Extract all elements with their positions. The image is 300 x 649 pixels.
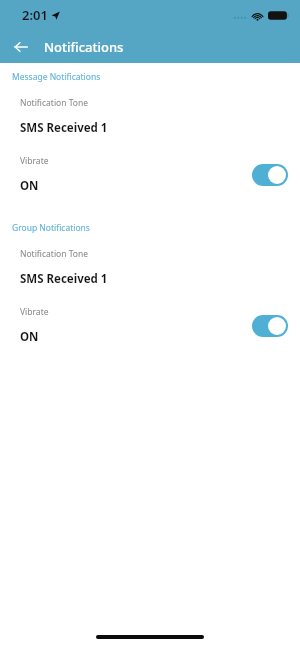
staticText: SMS Received 1 <box>20 120 108 136</box>
button[interactable]: Vibrate <box>0 306 300 345</box>
button[interactable]: Back <box>10 36 32 58</box>
staticText: Message Notifications <box>12 71 101 83</box>
staticText: Vibrate <box>20 306 49 318</box>
button[interactable]: Vibrate toggle, on <box>252 164 288 186</box>
staticText: ON <box>20 178 39 194</box>
staticText: Group Notifications <box>12 222 90 234</box>
staticText: Notification Tone <box>20 248 89 260</box>
button[interactable]: Notification Tone <box>0 248 300 287</box>
button[interactable]: Vibrate toggle, on <box>252 315 288 337</box>
staticText: Notifications <box>44 38 124 56</box>
button[interactable]: Notification Tone <box>0 97 300 136</box>
staticText: Notification Tone <box>20 97 89 109</box>
staticText: SMS Received 1 <box>20 271 108 287</box>
button[interactable]: Vibrate <box>0 155 300 194</box>
staticText: 2:01 <box>22 6 48 24</box>
staticText: Vibrate <box>20 155 49 167</box>
staticText: ON <box>20 329 39 345</box>
